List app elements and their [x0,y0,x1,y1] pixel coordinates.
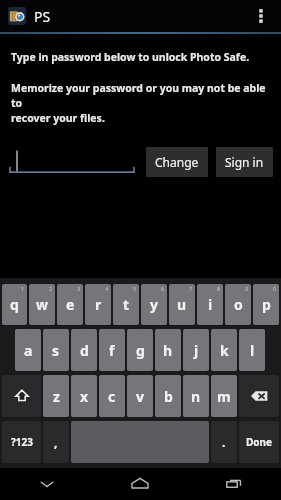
staticText: Memorize your password or you may not be… [11,81,270,125]
button[interactable]: Done [239,421,279,463]
staticText: u [177,295,187,314]
button[interactable]: k [211,329,237,371]
button[interactable]: c [99,375,125,417]
button[interactable]: j [183,329,209,371]
button[interactable]: More options [245,0,277,32]
button[interactable]: ?123 [2,421,41,463]
button[interactable]: Hide keyboard [0,468,93,500]
staticText: p [262,295,271,314]
staticText: 8 [217,285,221,292]
staticText: q [10,295,19,314]
button[interactable]: w [29,284,55,325]
staticText: y [150,295,158,314]
staticText: 2 [49,285,53,292]
staticText: 4 [105,285,109,292]
staticText: t [123,295,130,314]
button[interactable]: u [169,284,195,325]
staticText: . [222,434,226,450]
staticText: k [220,341,229,360]
staticText: m [217,387,231,406]
button[interactable]: Home [93,468,187,500]
button[interactable]: f [99,329,125,371]
button[interactable]: a [15,329,41,371]
staticText: n [191,387,201,406]
button[interactable]: i [197,284,223,325]
staticText: Type in password below to unlock Photo S… [11,50,250,64]
staticText: r [95,295,102,314]
button[interactable]: b [155,375,181,417]
button[interactable]: x [71,375,97,417]
staticText: c [108,387,116,406]
staticText: x [80,387,89,406]
staticText: d [80,341,89,360]
button[interactable]: Change [146,147,208,177]
staticText: a [24,341,33,360]
staticText: b [164,387,173,406]
button[interactable]: q [2,284,27,325]
staticText: 0 [273,285,277,292]
staticText: w [36,295,48,314]
button[interactable]: n [183,375,209,417]
button[interactable]: p [253,284,279,325]
button[interactable]: Recent apps [187,468,281,500]
staticText: 5 [133,285,137,292]
staticText: ?123 [11,435,33,449]
staticText: Change [155,154,199,170]
staticText: Sign in [225,154,264,170]
button[interactable]: Shift [2,375,41,417]
button[interactable]: y [141,284,167,325]
button[interactable]: , [43,421,69,463]
button[interactable]: h [155,329,181,371]
staticText: j [194,341,199,360]
staticText: PS [34,7,51,26]
button[interactable]: Password input [8,145,136,179]
button[interactable]: l [239,329,265,371]
button[interactable]: Sign in [216,147,273,177]
staticText: , [54,434,58,450]
staticText: 1 [21,285,25,292]
button[interactable]: o [225,284,251,325]
button[interactable]: e [57,284,83,325]
staticText: 3 [77,285,81,292]
staticText: Done [246,435,273,449]
button[interactable]: t [113,284,139,325]
button[interactable]: g [127,329,153,371]
staticText: 6 [161,285,165,292]
staticText: g [136,341,145,360]
button[interactable]: Delete [239,375,279,417]
staticText: o [234,295,243,314]
staticText: z [53,387,60,406]
button[interactable]: . [211,421,237,463]
staticText: f [109,341,115,360]
staticText: e [66,295,75,314]
staticText: 9 [245,285,249,292]
button[interactable]: s [43,329,69,371]
button[interactable]: d [71,329,97,371]
staticText: 7 [189,285,193,292]
staticText: h [163,341,173,360]
staticText: l [250,341,255,360]
button[interactable]: v [127,375,153,417]
staticText: i [208,295,213,314]
staticText: v [136,387,144,406]
button[interactable]: m [211,375,237,417]
button[interactable]: z [43,375,69,417]
button[interactable]: r [85,284,111,325]
staticText: s [52,341,60,360]
